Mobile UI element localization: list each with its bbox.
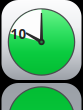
- button[interactable]: Clock: [1, 0, 81, 80]
- staticText: 10: [10, 25, 26, 43]
